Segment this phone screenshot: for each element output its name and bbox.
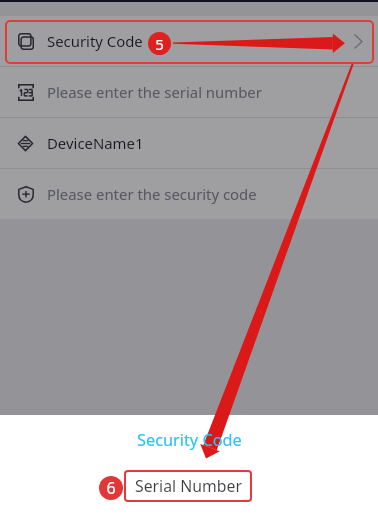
- staticText: Please enter the serial number: [47, 82, 262, 102]
- button[interactable]: Security Code: [137, 429, 242, 451]
- staticText: Please enter the security code: [47, 184, 257, 204]
- button[interactable]: Security Code: [0, 16, 378, 66]
- button[interactable]: Serial Number: [124, 470, 252, 502]
- button[interactable]: DeviceName1: [0, 118, 378, 168]
- staticText: 5: [155, 34, 164, 54]
- button[interactable]: Please enter the security code: [0, 169, 378, 219]
- button[interactable]: Please enter the serial number: [0, 67, 378, 117]
- staticText: Serial Number: [135, 475, 242, 497]
- staticText: Security Code: [137, 429, 242, 451]
- staticText: DeviceName1: [47, 133, 144, 153]
- staticText: Security Code: [47, 31, 143, 51]
- staticText: 6: [106, 477, 116, 499]
